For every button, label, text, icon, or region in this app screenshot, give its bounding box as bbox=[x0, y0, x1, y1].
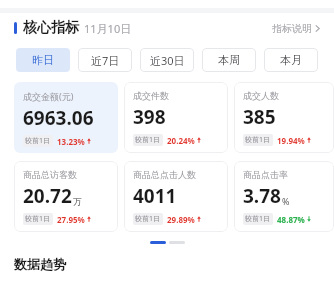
staticText: 13.23% bbox=[57, 136, 85, 147]
staticText: 数据趋势 bbox=[14, 256, 66, 272]
staticText: 昨日 bbox=[32, 53, 54, 67]
staticText: 商品总点击人数 bbox=[133, 169, 196, 180]
staticText: 成交人数 bbox=[243, 90, 279, 101]
staticText: 近30日 bbox=[150, 53, 185, 68]
staticText: 万 bbox=[73, 196, 82, 207]
staticText: 20.72 bbox=[23, 183, 72, 209]
staticText: 48.87% bbox=[277, 214, 305, 225]
button[interactable]: 成交人数 bbox=[234, 82, 334, 153]
staticText: 较前1日 bbox=[25, 214, 51, 224]
staticText: 较前1日 bbox=[25, 136, 51, 146]
button[interactable]: 商品点击率 bbox=[234, 161, 334, 232]
staticText: 较前1日 bbox=[245, 135, 271, 145]
staticText: 商品总访客数 bbox=[23, 169, 77, 180]
button[interactable]: 指标说明 bbox=[272, 22, 320, 35]
button[interactable]: 近7日 bbox=[78, 48, 132, 72]
staticText: 核心指标 bbox=[23, 19, 79, 37]
staticText: 本月 bbox=[280, 53, 302, 67]
staticText: 3.78 bbox=[243, 183, 281, 209]
staticText: 成交件数 bbox=[133, 90, 169, 101]
staticText: 较前1日 bbox=[245, 214, 271, 224]
button[interactable]: 商品总点击人数 bbox=[124, 161, 228, 232]
staticText: 19.94% bbox=[277, 135, 305, 146]
staticText: 较前1日 bbox=[135, 214, 161, 224]
staticText: 成交金额(元) bbox=[23, 90, 74, 102]
button[interactable]: 本月 bbox=[264, 48, 318, 72]
button[interactable]: 成交件数 bbox=[124, 82, 228, 153]
staticText: 近7日 bbox=[91, 53, 120, 68]
button[interactable]: 商品总访客数 bbox=[14, 161, 118, 232]
staticText: % bbox=[282, 195, 290, 207]
staticText: 11月10日 bbox=[84, 21, 132, 36]
button[interactable]: 昨日 bbox=[16, 48, 70, 72]
staticText: 385 bbox=[243, 104, 276, 130]
button[interactable]: 成交金额(元) bbox=[14, 82, 118, 153]
staticText: 本周 bbox=[218, 53, 240, 67]
button[interactable]: 本周 bbox=[202, 48, 256, 72]
staticText: 商品点击率 bbox=[243, 169, 288, 180]
button[interactable]: 近30日 bbox=[140, 48, 194, 72]
staticText: 29.89% bbox=[167, 214, 195, 225]
staticText: 6963.06 bbox=[23, 105, 94, 131]
staticText: 较前1日 bbox=[135, 135, 161, 145]
staticText: 指标说明 bbox=[272, 22, 312, 35]
staticText: 27.95% bbox=[57, 214, 85, 225]
staticText: 20.24% bbox=[167, 135, 195, 146]
staticText: 4011 bbox=[133, 183, 177, 209]
staticText: 398 bbox=[133, 104, 166, 130]
